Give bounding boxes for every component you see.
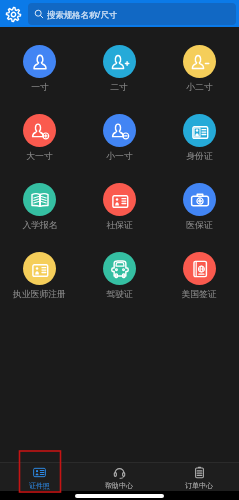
staticText: 搜索规格名称/尺寸 xyxy=(47,9,118,20)
button[interactable]: 大一寸 xyxy=(0,114,79,162)
button[interactable]: 驾驶证 xyxy=(79,252,159,300)
staticText: 医保证 xyxy=(186,220,213,231)
staticText: 一寸 xyxy=(31,82,49,93)
button[interactable]: 社保证 xyxy=(79,183,159,231)
button[interactable]: 帮助中心 xyxy=(79,463,159,491)
button[interactable]: 入学报名 xyxy=(0,183,79,231)
staticText: 驾驶证 xyxy=(106,289,133,300)
button[interactable]: 一寸 xyxy=(0,45,79,93)
staticText: 证件照 xyxy=(29,481,50,490)
staticText: 小一寸 xyxy=(106,151,133,162)
button[interactable]: 搜索规格名称/尺寸 xyxy=(28,3,236,25)
staticText: 社保证 xyxy=(106,220,133,231)
button[interactable]: 身份证 xyxy=(159,114,239,162)
staticText: 美国签证 xyxy=(181,289,217,300)
staticText: 帮助中心 xyxy=(105,481,133,490)
button[interactable]: 二寸 xyxy=(79,45,159,93)
staticText: 入学报名 xyxy=(22,220,58,231)
staticText: 身份证 xyxy=(186,151,213,162)
button[interactable]: 医保证 xyxy=(159,183,239,231)
button[interactable]: 证件照 xyxy=(0,463,79,491)
staticText: 小二寸 xyxy=(186,82,213,93)
staticText: 大一寸 xyxy=(26,151,53,162)
button[interactable]: Settings xyxy=(3,4,23,24)
button[interactable]: 执业医师注册 xyxy=(0,252,79,300)
button[interactable]: 小二寸 xyxy=(159,45,239,93)
button[interactable]: 订单中心 xyxy=(159,463,239,491)
staticText: 执业医师注册 xyxy=(13,289,66,300)
button[interactable]: 美国签证 xyxy=(159,252,239,300)
staticText: 订单中心 xyxy=(185,481,213,490)
button[interactable]: 小一寸 xyxy=(79,114,159,162)
staticText: 二寸 xyxy=(110,82,128,93)
